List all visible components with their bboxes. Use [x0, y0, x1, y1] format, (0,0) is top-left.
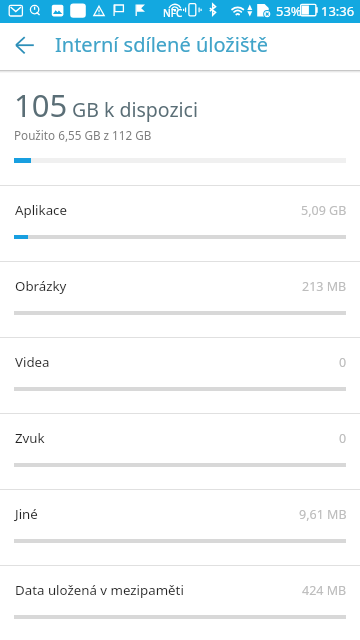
- staticText: 13:36: [321, 2, 355, 20]
- staticText: Obrázky: [15, 277, 67, 295]
- staticText: Interní sdílené úložiště: [55, 31, 268, 58]
- staticText: 424 MB: [302, 582, 347, 599]
- staticText: Aplikace: [15, 201, 67, 219]
- staticText: 105: [14, 84, 68, 126]
- button[interactable]: Back: [0, 23, 47, 70]
- staticText: 0: [339, 430, 347, 447]
- staticText: NFC: [163, 6, 183, 20]
- staticText: Jiné: [15, 505, 38, 523]
- button[interactable]: Data uložená v mezipaměti: [0, 565, 360, 640]
- staticText: 53%: [276, 2, 302, 20]
- button[interactable]: Videa: [0, 337, 360, 413]
- button[interactable]: Jiné: [0, 489, 360, 565]
- staticText: 213 MB: [302, 278, 347, 295]
- button[interactable]: Zvuk: [0, 413, 360, 489]
- staticText: 9,61 MB: [299, 506, 347, 523]
- staticText: 0: [339, 354, 347, 371]
- staticText: Použito 6,55 GB z 112 GB: [14, 127, 152, 143]
- staticText: Data uložená v mezipaměti: [15, 581, 184, 599]
- button[interactable]: Obrázky: [0, 261, 360, 337]
- staticText: 5,09 GB: [301, 202, 347, 219]
- staticText: Videa: [15, 353, 50, 371]
- staticText: GB k dispozici: [72, 96, 198, 123]
- staticText: Zvuk: [15, 429, 45, 447]
- button[interactable]: Aplikace: [0, 185, 360, 261]
